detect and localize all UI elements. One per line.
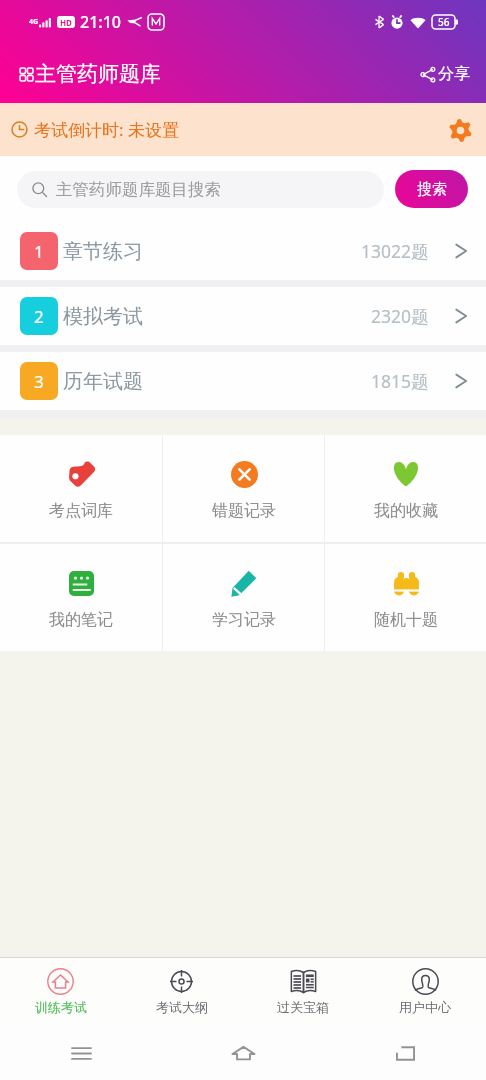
staticText: 考试倒计时: 未设置: [34, 118, 179, 141]
staticText: 训练考试: [35, 999, 87, 1015]
staticText: 模拟考试: [63, 304, 143, 329]
staticText: 历年试题: [63, 369, 143, 394]
button[interactable]: 我的收藏: [325, 435, 486, 542]
staticText: 主管药师题库: [35, 61, 161, 87]
button[interactable]: 分享: [421, 64, 470, 84]
button[interactable]: 错题记录: [163, 435, 324, 542]
staticText: 56: [438, 15, 450, 29]
staticText: 用户中心: [399, 999, 451, 1015]
button[interactable]: 考点词库: [0, 435, 162, 542]
button[interactable]: 3: [0, 352, 486, 410]
button[interactable]: 搜索: [395, 170, 468, 208]
staticText: HD: [60, 17, 72, 28]
button[interactable]: 主管药师题库题目搜索: [17, 171, 384, 208]
staticText: 13022题: [361, 239, 429, 263]
button[interactable]: Recents: [65, 1037, 97, 1069]
staticText: 1: [34, 240, 44, 263]
staticText: 3: [34, 370, 44, 393]
staticText: 分享: [438, 64, 470, 84]
staticText: 主管药师题库题目搜索: [56, 179, 221, 200]
staticText: 21:10: [80, 11, 121, 33]
staticText: 4G: [29, 17, 39, 27]
staticText: 考点词库: [49, 501, 113, 521]
button[interactable]: 主管药师题库: [20, 61, 161, 87]
button[interactable]: Settings: [447, 117, 473, 143]
button[interactable]: 考试大纲: [121, 958, 242, 1025]
staticText: 2: [34, 305, 44, 328]
staticText: 章节练习: [63, 239, 143, 264]
staticText: 1815题: [371, 369, 429, 393]
button[interactable]: Back: [389, 1037, 421, 1069]
button[interactable]: 用户中心: [364, 958, 486, 1025]
button[interactable]: 考试倒计时: 未设置: [0, 103, 486, 156]
button[interactable]: 过关宝箱: [242, 958, 364, 1025]
staticText: 过关宝箱: [277, 999, 329, 1015]
button[interactable]: 2: [0, 287, 486, 345]
button[interactable]: 学习记录: [163, 544, 324, 651]
button[interactable]: 我的笔记: [0, 544, 162, 651]
staticText: 搜索: [417, 180, 447, 199]
button[interactable]: 随机十题: [325, 544, 486, 651]
staticText: 随机十题: [374, 610, 438, 630]
staticText: 我的收藏: [374, 501, 438, 521]
button[interactable]: 训练考试: [0, 958, 121, 1025]
staticText: 考试大纲: [156, 999, 208, 1015]
button[interactable]: Home: [227, 1037, 259, 1069]
staticText: 错题记录: [212, 501, 276, 521]
staticText: 2320题: [371, 304, 429, 328]
staticText: 学习记录: [212, 610, 276, 630]
button[interactable]: 1: [0, 222, 486, 280]
staticText: 我的笔记: [49, 610, 113, 630]
